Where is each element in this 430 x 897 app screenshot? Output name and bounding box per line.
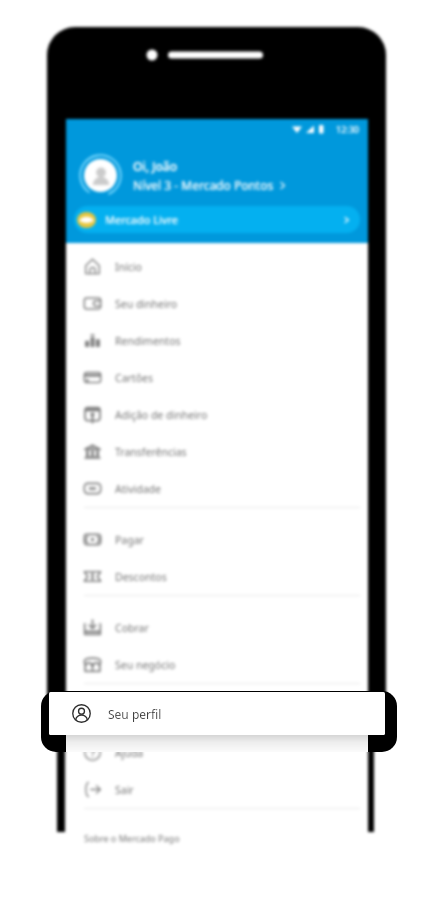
staticText: 12:30 [336,123,360,135]
button[interactable]: Transferências [66,433,368,470]
staticText: Seu perfil [108,706,162,722]
button[interactable]: Cartões [66,359,368,396]
staticText: Descontos [115,570,167,584]
staticText: Seu negócio [115,658,176,672]
button[interactable]: Seu negócio [66,646,368,683]
button[interactable]: Pagar [66,521,368,558]
button[interactable]: Adição de dinheiro [66,396,368,433]
button[interactable]: Mercado Livre [74,206,360,233]
staticText: Seu perfil [115,709,162,723]
staticText: Sair [115,783,134,797]
staticText: Transferências [115,445,187,459]
button[interactable]: Sobre o Mercado Pago [84,832,180,844]
staticText: Oi, João [133,158,178,174]
staticText: Atividade [115,482,161,496]
staticText: Cobrar [115,621,149,635]
staticText: Início [115,260,142,274]
staticText: Ajuda [115,746,144,760]
button[interactable]: Ajuda [66,734,368,771]
staticText: Seu dinheiro [115,297,178,311]
button[interactable]: Rendimentos [66,322,368,359]
button[interactable]: Sair [66,771,368,808]
button[interactable]: Cobrar [66,609,368,646]
staticText: Mercado Livre [105,212,178,227]
button[interactable]: Seu perfil [66,697,368,734]
button[interactable]: Seu perfil [49,692,385,735]
button[interactable]: Atividade [66,470,368,507]
button[interactable]: Seu dinheiro [66,285,368,322]
staticText: Rendimentos [115,334,181,348]
staticText: Adição de dinheiro [115,408,208,422]
staticText: Nível 3 - Mercado Pontos [133,177,274,193]
button[interactable]: Descontos [66,558,368,595]
staticText: Pagar [115,533,144,547]
staticText: Cartões [115,371,153,385]
button[interactable]: Início [66,248,368,285]
